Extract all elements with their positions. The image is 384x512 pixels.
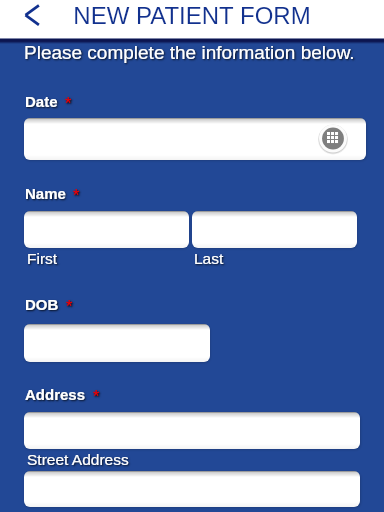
staticText: *	[73, 187, 80, 205]
staticText: DOB	[25, 296, 59, 313]
staticText: First	[27, 250, 58, 267]
staticText: Street Address	[27, 451, 129, 468]
staticText: *	[65, 95, 72, 113]
staticText: NEW PATIENT FORM	[73, 2, 311, 29]
staticText: Date	[25, 93, 58, 110]
button[interactable]	[192, 211, 357, 248]
staticText: Name	[25, 185, 66, 202]
button[interactable]	[24, 412, 360, 449]
staticText: *	[93, 388, 100, 406]
staticText: *	[66, 298, 73, 316]
button[interactable]	[24, 324, 210, 362]
button[interactable]	[24, 211, 189, 248]
staticText: Address	[25, 386, 86, 403]
button[interactable]: Pick date	[318, 124, 348, 154]
staticText: Please complete the information below.	[24, 42, 355, 63]
button[interactable]	[24, 118, 366, 160]
button[interactable]: Back	[18, 1, 46, 29]
staticText: Last	[194, 250, 224, 267]
button[interactable]	[24, 471, 360, 507]
